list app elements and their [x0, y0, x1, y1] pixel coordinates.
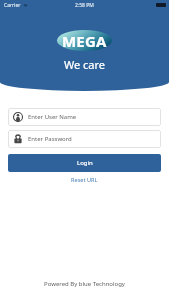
button[interactable]: Enter Password — [8, 130, 161, 148]
staticText: MEGA — [62, 31, 107, 51]
staticText: Carrier — [4, 2, 21, 9]
staticText: We care — [64, 57, 106, 72]
button[interactable]: Login — [8, 154, 161, 172]
button[interactable]: Enter User Name — [8, 108, 161, 126]
staticText: Login — [77, 159, 93, 167]
staticText: Enter Password — [28, 135, 72, 143]
button[interactable]: Reset URL — [67, 175, 102, 185]
staticText: Reset URL — [71, 176, 98, 184]
staticText: Powered By blue Technology — [44, 280, 125, 288]
staticText: Enter User Name — [28, 113, 77, 121]
staticText: 2:58 PM — [75, 2, 94, 9]
